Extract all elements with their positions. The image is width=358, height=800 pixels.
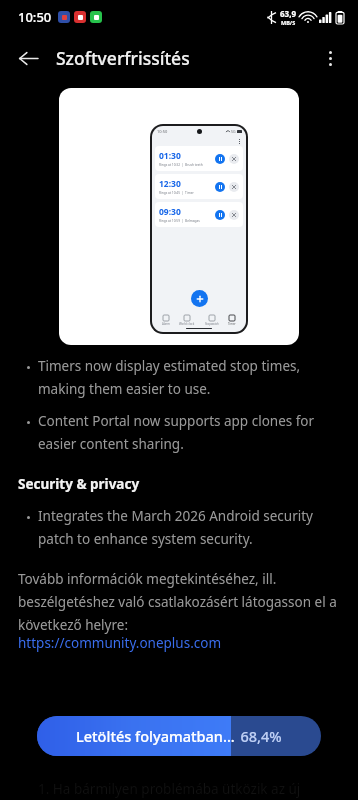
button[interactable]: More options [310,38,350,78]
staticText: Tovább információk megtekintéséhez, ill.… [18,570,340,634]
staticText: 63,9 [280,8,297,19]
staticText: 10:50 [157,129,168,134]
staticText: 68,4% [240,726,282,746]
staticText: Alarm [162,322,170,326]
staticText: Letöltés folyamatban... [76,726,235,746]
staticText: Security & privacy [18,475,140,493]
staticText: 12:30 [159,178,181,190]
staticText: 01:30 [159,150,181,162]
staticText: 10:50 [18,8,52,26]
staticText: 1. Ha bármilyen problémába ütközik az új [38,780,301,798]
staticText: 5G [231,129,236,134]
staticText: Timers now display estimated stop times,… [38,357,340,398]
button[interactable]: Back [6,36,50,80]
staticText: Timer [228,322,236,326]
staticText: 09:30 [159,206,181,218]
staticText: https://community.oneplus.com [18,634,222,652]
button[interactable]: https://community.oneplus.com [18,634,222,652]
staticText: Rings at 10:45 | Timer [159,191,194,195]
staticText: Content Portal now supports app clones f… [38,412,340,453]
staticText: Szoftverfrissítés [56,46,190,70]
staticText: Rings at 10:59 | Belmagas [159,219,200,223]
button[interactable]: Letöltés folyamatban 68,4% [37,716,321,756]
staticText: MB/S [281,19,296,26]
staticText: Rings at 10:32 | Brush teeth [159,163,203,167]
staticText: Stopwatch [205,322,219,326]
staticText: Integrates the March 2026 Android securi… [38,507,340,548]
staticText: World clock [179,322,195,326]
